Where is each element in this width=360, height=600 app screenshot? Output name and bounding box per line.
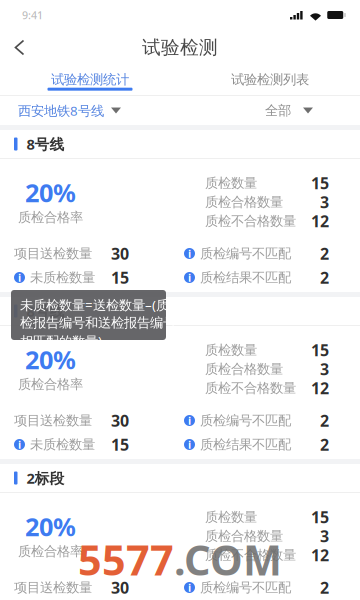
- staticText: 8号线: [26, 134, 64, 154]
- staticText: 质检结果不匹配: [200, 436, 291, 453]
- staticText: 15: [111, 267, 129, 288]
- staticText: 试验检测列表: [231, 71, 309, 88]
- staticText: 2标段: [26, 468, 64, 488]
- staticText: 质检不合格数量: [205, 380, 296, 396]
- button[interactable]: 试验检测统计: [0, 65, 180, 95]
- staticText: 质检合格数量: [205, 194, 283, 210]
- button[interactable]: Back: [0, 30, 39, 65]
- staticText: 相匹配的数量): [20, 332, 102, 350]
- staticText: i: [18, 437, 21, 452]
- staticText: 2: [320, 577, 329, 598]
- staticText: 未质检数量: [30, 436, 95, 453]
- staticText: i: [188, 413, 191, 428]
- staticText: i: [188, 246, 191, 261]
- staticText: 试验检测: [142, 36, 218, 59]
- button[interactable]: 全部: [180, 96, 360, 125]
- staticText: 质检数量: [205, 342, 257, 358]
- staticText: 2: [320, 434, 329, 455]
- staticText: 质检合格率: [18, 543, 83, 559]
- staticText: .COM: [174, 532, 282, 587]
- staticText: i: [18, 270, 21, 285]
- staticText: 20%: [25, 342, 76, 376]
- staticText: 检报告编号和送检报告编号: [20, 315, 176, 331]
- staticText: i: [188, 580, 191, 595]
- staticText: 未质检数量=送检数量–(质: [20, 296, 169, 314]
- staticText: 9:41: [22, 8, 43, 22]
- staticText: 3: [320, 525, 329, 547]
- staticText: 15: [311, 506, 329, 528]
- staticText: 质检编号不匹配: [200, 412, 291, 429]
- staticText: 15: [311, 339, 329, 361]
- staticText: 12: [311, 544, 329, 566]
- staticText: 质检合格数量: [205, 361, 283, 377]
- staticText: 质检编号不匹配: [200, 579, 291, 596]
- staticText: 3: [320, 191, 329, 213]
- staticText: 3: [320, 358, 329, 380]
- staticText: 未质检数量: [30, 269, 95, 286]
- staticText: i: [188, 270, 191, 285]
- staticText: 12: [311, 210, 329, 232]
- staticText: 15: [311, 172, 329, 194]
- staticText: 30: [111, 577, 129, 598]
- staticText: 项目送检数量: [14, 412, 92, 429]
- staticText: 试验检测统计: [51, 71, 129, 88]
- staticText: 质检不合格数量: [205, 213, 296, 229]
- staticText: 2: [320, 243, 329, 264]
- staticText: 质检数量: [205, 509, 257, 525]
- staticText: 2: [320, 267, 329, 288]
- staticText: 20%: [25, 509, 76, 543]
- staticText: 质检数量: [205, 175, 257, 191]
- staticText: 30: [111, 410, 129, 431]
- staticText: 8号线: [26, 301, 64, 321]
- staticText: 全部: [265, 102, 291, 119]
- staticText: 质检合格率: [18, 209, 83, 225]
- button[interactable]: 西安地铁8号线: [0, 96, 180, 125]
- button[interactable]: 试验检测列表: [180, 65, 360, 95]
- staticText: 15: [111, 434, 129, 455]
- staticText: 5577: [78, 532, 174, 587]
- staticText: 质检不合格数量: [205, 547, 296, 563]
- staticText: 质检结果不匹配: [200, 269, 291, 286]
- staticText: 项目送检数量: [14, 245, 92, 262]
- staticText: 30: [111, 243, 129, 264]
- staticText: 西安地铁8号线: [18, 102, 104, 119]
- staticText: 12: [311, 377, 329, 399]
- staticText: 质检合格数量: [205, 528, 283, 544]
- staticText: 2: [320, 410, 329, 431]
- staticText: i: [188, 437, 191, 452]
- staticText: 项目送检数量: [14, 579, 92, 596]
- staticText: 20%: [25, 175, 76, 209]
- staticText: 质检合格率: [18, 376, 83, 392]
- staticText: 质检编号不匹配: [200, 245, 291, 262]
